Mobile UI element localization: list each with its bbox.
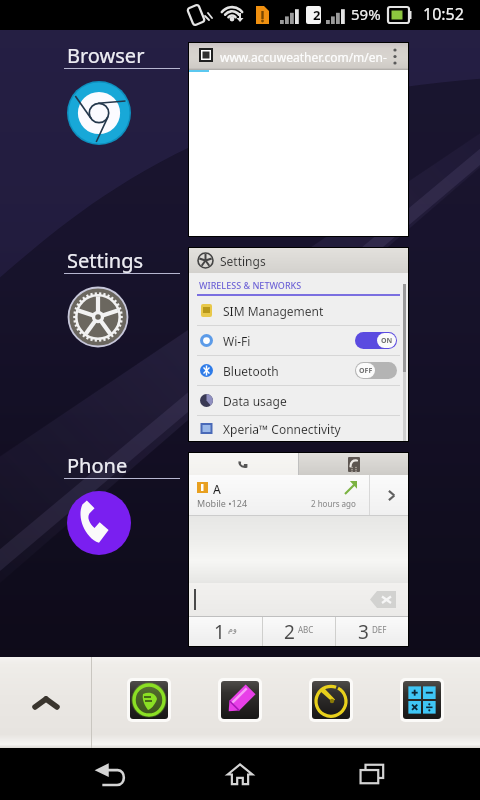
staticText: 2 [313, 6, 321, 24]
button[interactable]: SIM Management [189, 296, 408, 325]
button[interactable]: Call log tab [299, 453, 408, 475]
button[interactable]: Calculator [400, 678, 444, 722]
button[interactable]: Bluetooth [189, 356, 408, 385]
staticText: A [213, 481, 221, 497]
staticText: DEF [372, 624, 387, 635]
button[interactable]: Back [70, 748, 150, 800]
staticText: Wi-Fi [223, 333, 251, 349]
staticText: 1 [214, 619, 225, 645]
button[interactable]: Data usage [189, 386, 408, 415]
button[interactable]: OFF [355, 362, 397, 379]
staticText: Phone [67, 452, 128, 479]
staticText: ABC [298, 624, 314, 635]
staticText: SIM Management [223, 303, 324, 319]
button[interactable]: A [189, 475, 408, 515]
staticText: وم [228, 625, 237, 634]
staticText: Mobile •124 [197, 497, 248, 509]
staticText: Xperia™ Connectivity [223, 421, 341, 437]
staticText: Browser [67, 42, 145, 69]
button[interactable]: Notes [218, 678, 262, 722]
staticText: www.accuweather.com/m/en- [220, 49, 387, 65]
button[interactable]: Dialer tab [189, 453, 408, 646]
button[interactable]: 1 [189, 617, 262, 646]
button[interactable]: ON [355, 332, 397, 349]
button[interactable]: Recent apps [332, 748, 412, 800]
button[interactable]: Dialer tab [189, 453, 298, 475]
button[interactable]: Wi-Fi [189, 326, 408, 355]
button[interactable]: Browser [64, 47, 184, 177]
button[interactable]: 3 [336, 617, 408, 646]
staticText: 10:52 [423, 3, 464, 25]
button[interactable]: Settings [64, 252, 184, 382]
staticText: 2 hours ago [311, 498, 356, 509]
button[interactable]: Browser [127, 678, 171, 722]
staticText: 59% [351, 4, 381, 24]
staticText: WIRELESS & NETWORKS [199, 279, 302, 291]
staticText: Data usage [223, 393, 287, 409]
button[interactable]: www.accuweather.com/m/en- [189, 43, 408, 236]
staticText: OFF [359, 366, 373, 376]
staticText: Bluetooth [223, 363, 279, 379]
button[interactable]: Home [200, 748, 280, 800]
staticText: 2 [284, 619, 295, 645]
staticText: Settings [220, 253, 266, 269]
button[interactable]: 2 [263, 617, 335, 646]
button[interactable]: Expand [0, 657, 91, 748]
staticText: ON [381, 336, 393, 346]
button[interactable]: Xperia™ Connectivity [189, 416, 408, 441]
button[interactable]: Phone [64, 457, 184, 587]
button[interactable]: Timer [309, 678, 353, 722]
button[interactable]: Settings [189, 248, 408, 441]
staticText: 3 [358, 619, 369, 645]
staticText: Settings [67, 247, 144, 274]
